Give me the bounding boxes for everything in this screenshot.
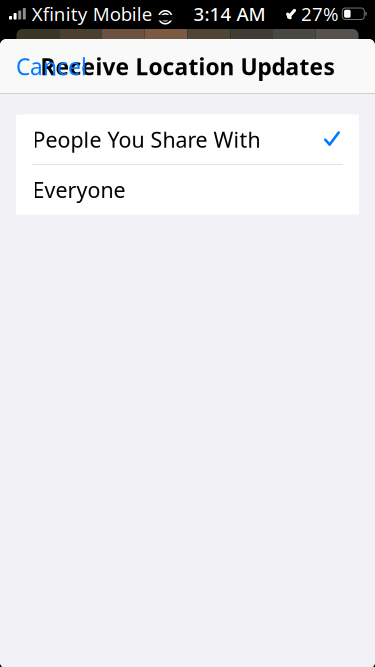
staticText: Xfinity Mobile — [32, 1, 153, 26]
staticText: 27% — [301, 1, 339, 26]
staticText: People You Share With — [32, 125, 260, 154]
button[interactable]: Everyone — [16, 165, 359, 214]
staticText: Everyone — [32, 176, 125, 204]
button[interactable]: Cancel — [8, 43, 95, 89]
staticText: Receive Location Updates — [40, 51, 334, 81]
button[interactable]: People You Share With — [16, 114, 359, 164]
staticText: Cancel — [16, 51, 87, 81]
staticText: 3:14 AM — [193, 1, 265, 26]
